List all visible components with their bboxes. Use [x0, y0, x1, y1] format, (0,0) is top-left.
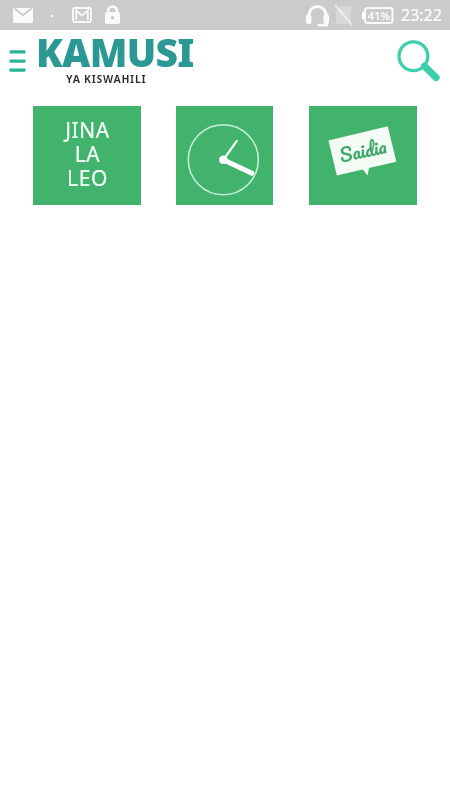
button[interactable]: Open navigation menu — [0, 44, 35, 80]
staticText: 23:22 — [401, 4, 442, 26]
staticText: 41% — [368, 8, 390, 23]
button[interactable]: JINA LA LEO — [33, 106, 141, 205]
button[interactable]: Search — [394, 31, 446, 87]
button[interactable]: Saidia — help — [309, 106, 417, 205]
staticText: Saidia — [337, 130, 390, 171]
staticText: YA KISWAHILI — [66, 72, 147, 86]
staticText: JINA LA LEO — [65, 116, 110, 193]
button[interactable]: Neno la saa — clock — [176, 106, 273, 205]
staticText: KAMUSI — [36, 25, 194, 78]
